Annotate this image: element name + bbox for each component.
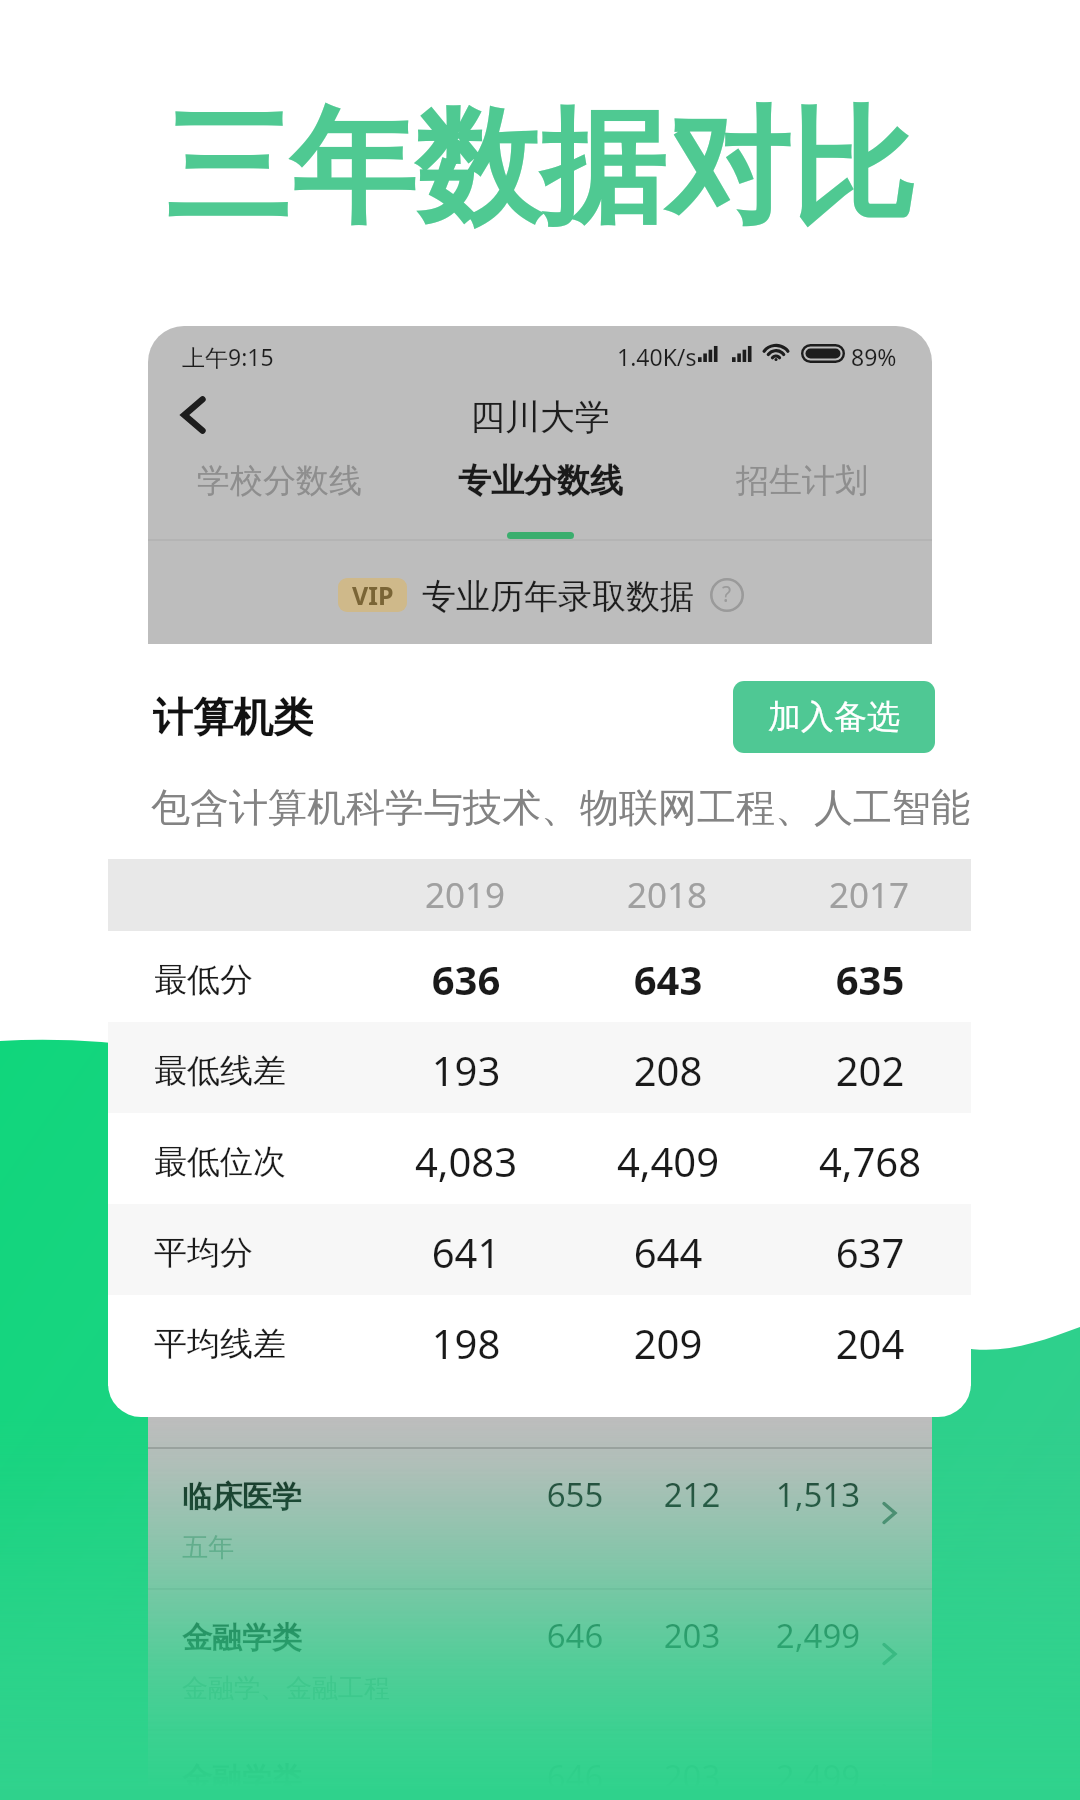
staticText: 学校分数线 <box>197 460 362 502</box>
button[interactable]: 学校分数线 <box>148 448 410 514</box>
button[interactable]: 临床医学 <box>148 1447 932 1588</box>
staticText: 203 <box>637 1613 747 1658</box>
staticText: 641 <box>365 1225 567 1279</box>
staticText: 包含计算机科学与技术、物联网工程、人工智能 <box>151 783 970 832</box>
staticText: 最低分 <box>154 959 253 1001</box>
staticText: 2019 <box>364 871 566 919</box>
staticText: 金融学、金融工程 <box>182 1672 390 1705</box>
staticText: 1,513 <box>763 1472 873 1517</box>
button[interactable]: 金融学类 <box>148 1588 932 1729</box>
staticText: 209 <box>567 1316 769 1370</box>
staticText: 202 <box>769 1043 971 1097</box>
staticText: 635 <box>769 952 971 1006</box>
staticText: 193 <box>365 1043 567 1097</box>
staticText: 204 <box>769 1316 971 1370</box>
staticText: 644 <box>567 1225 769 1279</box>
staticText: 89% <box>851 341 897 372</box>
staticText: 五年 <box>182 1531 234 1564</box>
staticText: 平均线差 <box>154 1323 286 1365</box>
staticText: 专业分数线 <box>458 460 623 502</box>
staticText: 上午9:15 <box>182 341 274 372</box>
staticText: ? <box>722 580 732 609</box>
staticText: 招生计划 <box>736 460 868 502</box>
staticText: 加入备选 <box>768 696 900 738</box>
staticText: 金融学类 <box>182 1619 302 1657</box>
staticText: 1.40K/s <box>617 341 697 372</box>
staticText: 专业历年录取数据 <box>422 575 694 618</box>
button[interactable]: 加入备选 <box>733 681 935 753</box>
staticText: 637 <box>769 1225 971 1279</box>
staticText: 212 <box>637 1472 747 1517</box>
staticText: 2,499 <box>763 1613 873 1658</box>
staticText: 最低线差 <box>154 1050 286 1092</box>
button[interactable]: 招生计划 <box>671 448 932 514</box>
staticText: VIP <box>352 578 394 612</box>
staticText: 2017 <box>768 871 970 919</box>
staticText: 三年数据对比 <box>165 90 915 247</box>
staticText: 4,768 <box>769 1134 971 1188</box>
button[interactable]: 金融学类 <box>148 1729 932 1800</box>
staticText: 646 <box>520 1613 630 1658</box>
button[interactable]: 专业分数线 <box>410 448 671 514</box>
staticText: 636 <box>365 952 567 1006</box>
staticText: 198 <box>365 1316 567 1370</box>
staticText: 临床医学 <box>182 1478 302 1516</box>
staticText: 208 <box>567 1043 769 1097</box>
staticText: 最低位次 <box>154 1141 286 1183</box>
staticText: 四川大学 <box>470 395 610 439</box>
staticText: 平均分 <box>154 1232 253 1274</box>
staticText: 643 <box>567 952 769 1006</box>
staticText: 655 <box>520 1472 630 1517</box>
staticText: 4,083 <box>365 1134 567 1188</box>
staticText: 4,409 <box>567 1134 769 1188</box>
staticText: 计算机类 <box>153 692 313 742</box>
button[interactable]: Back <box>165 387 221 443</box>
staticText: 2018 <box>566 871 768 919</box>
